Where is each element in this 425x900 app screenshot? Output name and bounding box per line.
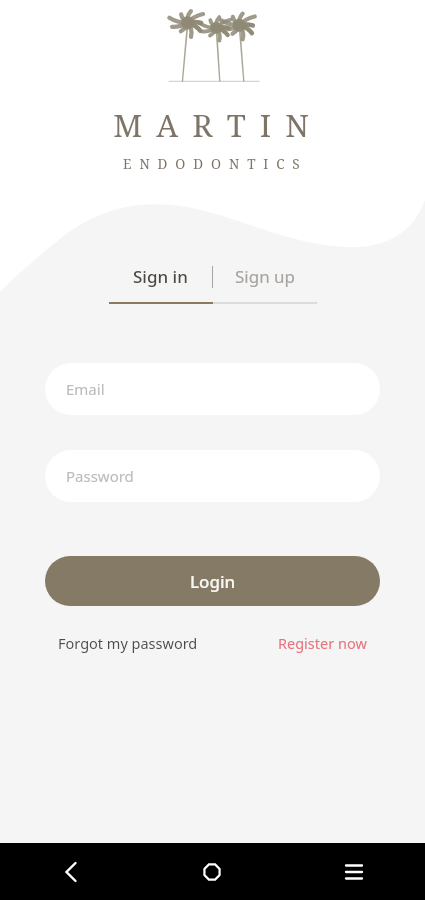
button[interactable]: Password xyxy=(45,450,380,502)
staticText: Password xyxy=(66,466,134,486)
staticText: M A R T I N xyxy=(113,104,312,146)
staticText: E N D O D O N T I C S xyxy=(123,155,302,173)
button[interactable]: Email xyxy=(45,363,380,415)
button[interactable]: Sign up xyxy=(213,261,317,292)
staticText: Sign up xyxy=(235,265,296,288)
staticText: Email xyxy=(66,379,105,399)
button[interactable]: Forgot my password xyxy=(58,633,198,653)
staticText: Login xyxy=(190,570,236,593)
button[interactable]: Register now xyxy=(278,633,367,653)
staticText: Forgot my password xyxy=(58,633,198,653)
staticText: Register now xyxy=(278,633,367,653)
staticText: Sign in xyxy=(133,265,188,288)
button[interactable]: Sign in xyxy=(109,261,212,292)
button[interactable]: Login xyxy=(45,556,380,606)
button[interactable]: Back xyxy=(0,843,141,900)
button[interactable]: Recent apps xyxy=(283,843,425,900)
button[interactable]: Home xyxy=(141,843,283,900)
